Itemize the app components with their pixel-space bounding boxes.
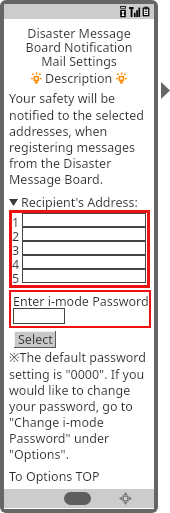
button[interactable] — [22, 255, 146, 269]
button[interactable]: To Options TOP — [9, 468, 100, 485]
button[interactable]: Select — [14, 331, 56, 348]
staticText: Recipient's Address: — [21, 194, 138, 210]
staticText: 3 — [12, 242, 22, 256]
staticText: Your safety will be notified to the sele… — [9, 90, 153, 187]
staticText: 2 — [12, 228, 22, 242]
button[interactable] — [22, 269, 146, 283]
staticText: 1 — [12, 214, 22, 228]
staticText: 5 — [12, 270, 22, 284]
button[interactable]: Password field — [13, 308, 65, 324]
button[interactable] — [22, 213, 146, 227]
button[interactable]: Next page — [161, 82, 170, 99]
staticText: Select — [18, 331, 53, 348]
staticText: Enter i-mode Password — [13, 293, 149, 310]
button[interactable] — [22, 227, 146, 241]
staticText: Disaster Message Board Notification Mail… — [7, 25, 151, 70]
button[interactable] — [22, 241, 146, 255]
staticText: Description — [45, 70, 113, 87]
staticText: 4 — [12, 256, 22, 270]
staticText: ※The default password setting is "0000".… — [9, 349, 153, 462]
button[interactable]: Direction pad — [119, 492, 132, 505]
button[interactable]: Select key — [64, 492, 91, 505]
